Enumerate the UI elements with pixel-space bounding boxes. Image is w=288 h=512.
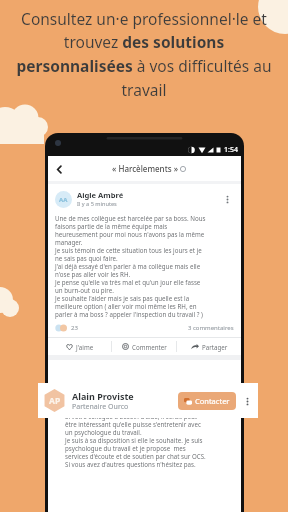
staticText: Je souhaite l'aider mais je sais pas que… bbox=[55, 294, 190, 302]
staticText: Il y a 5 minutes bbox=[77, 200, 117, 208]
staticText: Bonjour Lion Violet, je penses que la me… bbox=[65, 388, 200, 396]
staticText: psychologue du travail et je propose mes bbox=[65, 444, 186, 452]
staticText: J'ai déjà essayé d'en parler à ma collèg… bbox=[55, 262, 201, 270]
staticText: Commenter bbox=[132, 343, 167, 351]
staticText: 3 commentaires bbox=[188, 324, 234, 332]
staticText: parler à ma boss ? appeler l'inspection … bbox=[55, 310, 203, 318]
staticText: Si votre collègue a besoin d'aide, il se… bbox=[65, 412, 198, 420]
staticText: Partenaire Ourco bbox=[72, 402, 129, 412]
staticText: Je suis témoin de cette situation tous l… bbox=[55, 246, 202, 254]
staticText: un psychologue du travail. bbox=[65, 428, 142, 436]
button[interactable]: Commenter bbox=[112, 338, 176, 355]
staticText: Partager bbox=[202, 343, 228, 351]
staticText: Je suis à sa disposition si elle le souh… bbox=[65, 436, 203, 444]
staticText: marche pas l'inspection du travail. bbox=[65, 404, 164, 412]
staticText: Je pense qu'elle va très mal et qu'un jo… bbox=[55, 278, 201, 286]
staticText: services d'écoute et de soutien par chat… bbox=[65, 452, 206, 460]
staticText: n'ose pas aller voir les RH. bbox=[55, 270, 131, 278]
staticText: ne sais pas quoi faire. bbox=[55, 254, 118, 262]
staticText: AP bbox=[49, 395, 61, 407]
staticText: Si vous avez d'autres questions n'hésite… bbox=[65, 460, 196, 468]
staticText: Contacter bbox=[195, 396, 230, 406]
button[interactable]: Partager bbox=[177, 338, 241, 355]
button[interactable]: Back bbox=[48, 158, 70, 180]
staticText: heureusement pour moi nous n'avons pas l… bbox=[55, 230, 205, 238]
staticText: un burn-out ou pire. bbox=[55, 286, 114, 294]
button[interactable]: More options bbox=[241, 395, 253, 407]
staticText: Aigle Ambré bbox=[77, 190, 124, 200]
staticText: J'aime bbox=[76, 343, 94, 351]
staticText: Alain Proviste bbox=[72, 390, 134, 402]
staticText: Consultez un·e professionnel·le et trouv… bbox=[12, 8, 276, 101]
button[interactable]: More options bbox=[221, 193, 234, 206]
staticText: « Harcèlements » bbox=[112, 163, 178, 174]
button[interactable]: Contacter bbox=[178, 392, 236, 410]
staticText: meilleure option ( aller voir moi même l… bbox=[55, 302, 197, 310]
staticText: AA bbox=[59, 196, 68, 204]
staticText: manager. bbox=[55, 238, 83, 246]
staticText: solution est d'aller voir les RH et si c… bbox=[65, 396, 186, 404]
staticText: être intéressant qu'elle puisse s'entret… bbox=[65, 420, 201, 428]
button[interactable]: J'aime bbox=[48, 338, 111, 355]
button[interactable]: AP bbox=[38, 383, 258, 418]
staticText: 1:54 bbox=[224, 145, 238, 155]
staticText: 23 bbox=[71, 324, 78, 332]
staticText: Une de mes collègue est harcelée par sa … bbox=[55, 214, 206, 222]
staticText: faisons partie de la même équipe mais bbox=[55, 222, 168, 230]
